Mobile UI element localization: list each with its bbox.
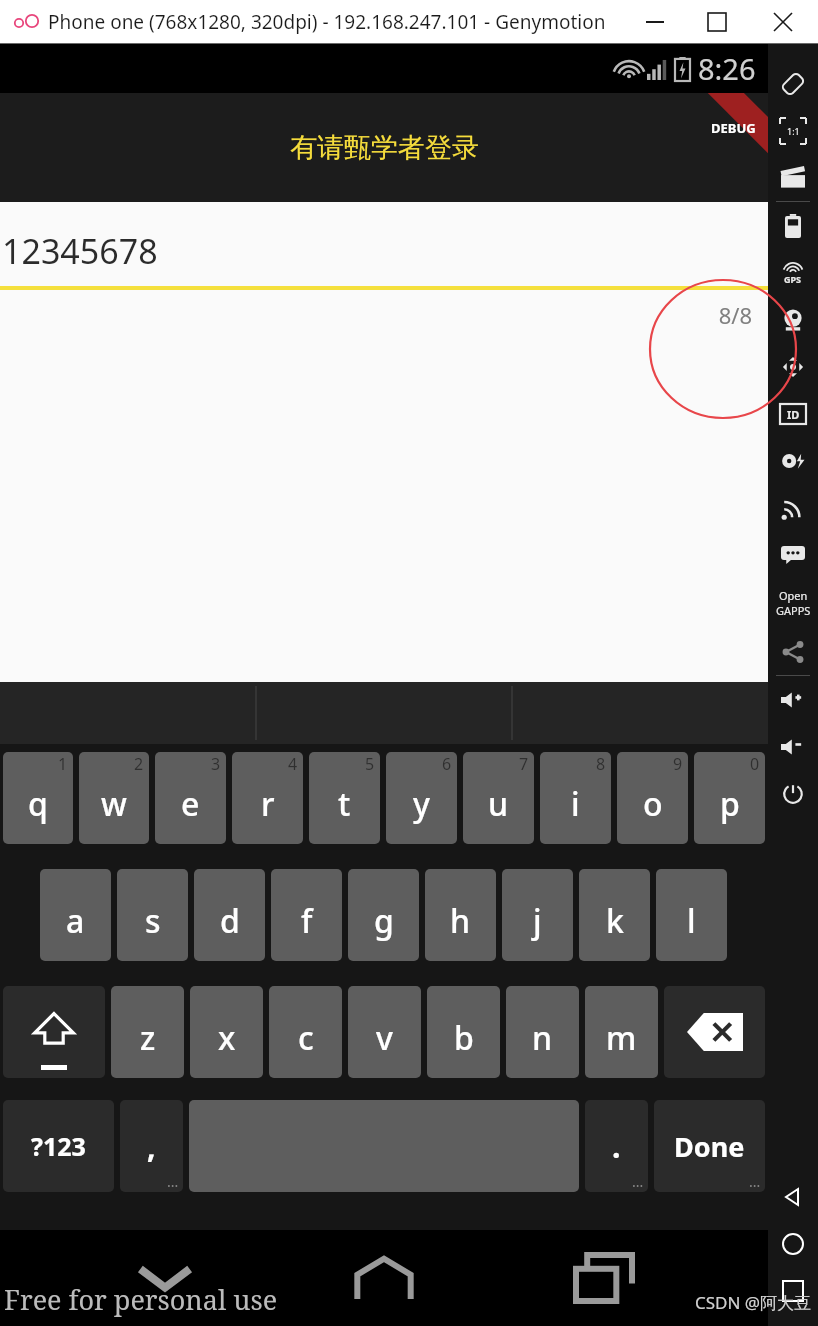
staticText: GPS [784,273,802,285]
button[interactable]: Power [768,770,818,817]
button[interactable]: Shift [3,986,105,1078]
staticText: 有请甄学者登录 [290,131,479,165]
staticText: v [376,1016,393,1060]
staticText: f [301,899,313,943]
button[interactable]: GPS [768,249,818,296]
button[interactable]: b [427,986,500,1078]
button[interactable]: Identifiers [768,390,818,437]
staticText: ID [787,407,800,422]
button[interactable]: 2 [79,752,149,844]
button[interactable]: Recents [549,1230,659,1326]
button[interactable]: Backspace [664,986,765,1078]
staticText: t [338,782,351,826]
staticText: 9 [673,753,683,775]
button[interactable]: Done [654,1100,765,1192]
button[interactable]: 3 [155,752,226,844]
button[interactable]: c [269,986,342,1078]
button[interactable]: Volume up [768,676,818,723]
button[interactable]: g [348,869,419,961]
button[interactable]: f [271,869,342,961]
button[interactable]: z [111,986,184,1078]
button[interactable]: 0 [694,752,765,844]
staticText: x [218,1016,236,1060]
button[interactable]: 4 [232,752,303,844]
button[interactable]: s [117,869,188,961]
staticText: i [571,782,580,826]
button[interactable]: Accelerometer [768,343,818,390]
staticText: z [140,1016,156,1060]
staticText: . [612,1126,621,1167]
button[interactable]: Back [768,1173,818,1220]
button[interactable]: SMS [768,531,818,578]
staticText: ... [632,1172,644,1191]
button[interactable]: Record [768,154,818,201]
button[interactable]: Close [748,0,818,44]
button[interactable]: a [40,869,111,961]
button[interactable]: 1 [3,752,73,844]
button[interactable]: Rotate [768,60,818,107]
button[interactable]: h [425,869,496,961]
staticText: 12345678 [2,228,158,274]
button[interactable]: Open [768,578,818,628]
staticText: 5 [365,753,375,775]
button[interactable]: 8 [540,752,611,844]
button[interactable]: l [656,869,727,961]
button[interactable]: 5 [309,752,380,844]
staticText: u [488,782,509,826]
button[interactable]: Recents [768,1267,818,1314]
button[interactable]: x [190,986,263,1078]
staticText: 1 [58,753,68,775]
staticText: 2 [134,753,144,775]
button[interactable]: d [194,869,265,961]
button[interactable]: Home [768,1220,818,1267]
staticText: 8/8 [0,300,752,330]
staticText: g [374,899,394,943]
button[interactable]: , [120,1100,183,1192]
button[interactable]: 6 [386,752,457,844]
staticText: ?123 [31,1129,86,1163]
button[interactable]: Network [768,484,818,531]
staticText: k [606,899,624,943]
button[interactable]: Maximize [686,0,748,44]
button[interactable]: Disk IO [768,437,818,484]
staticText: Phone one (768x1280, 320dpi) - 192.168.2… [48,9,606,35]
staticText: l [687,899,696,943]
button[interactable]: j [502,869,573,961]
staticText: Open [779,588,808,603]
button[interactable]: v [348,986,421,1078]
button[interactable]: . [585,1100,648,1192]
staticText: 6 [442,753,452,775]
staticText: 1:1 [787,125,800,137]
button[interactable]: m [585,986,658,1078]
button[interactable]: Volume down [768,723,818,770]
button[interactable]: n [506,986,579,1078]
button[interactable]: Back [110,1230,220,1326]
staticText: e [181,782,200,826]
staticText: Done [674,1128,745,1165]
staticText: a [66,899,85,943]
staticText: Free for personal use [4,1281,278,1318]
button[interactable]: Camera [768,296,818,343]
staticText: DEBUG [711,119,756,137]
button[interactable]: k [579,869,650,961]
staticText: y [413,782,430,826]
button[interactable]: Minimize [624,0,686,44]
staticText: 8 [596,753,606,775]
staticText: d [220,899,240,943]
button[interactable]: Share [768,628,818,675]
staticText: 8:26 [698,49,756,88]
staticText: ... [749,1172,761,1191]
button[interactable]: Battery [768,202,818,249]
staticText: 4 [288,753,298,775]
staticText: j [533,899,542,943]
staticText: p [720,782,740,826]
button[interactable]: Scale 1:1 [768,107,818,154]
button[interactable]: 9 [617,752,688,844]
button[interactable]: Home [329,1230,439,1326]
staticText: 3 [211,753,221,775]
staticText: r [261,782,275,826]
staticText: s [145,899,161,943]
button[interactable]: 7 [463,752,534,844]
button[interactable]: ?123 [3,1100,114,1192]
